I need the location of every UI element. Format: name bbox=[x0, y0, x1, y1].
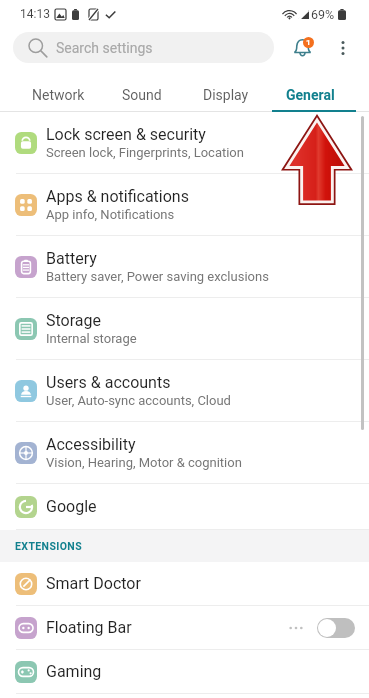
staticText: 69% bbox=[311, 7, 335, 22]
staticText: Lock screen & security bbox=[46, 125, 206, 144]
staticText: EXTENSIONS bbox=[15, 540, 83, 552]
button[interactable]: Display bbox=[184, 80, 268, 109]
button[interactable]: Network bbox=[16, 80, 100, 109]
staticText: Network bbox=[32, 87, 85, 103]
staticText: Display bbox=[203, 87, 249, 103]
staticText: Battery bbox=[46, 249, 97, 268]
staticText: Screen lock, Fingerprints, Location bbox=[46, 145, 244, 160]
button[interactable]: Gaming bbox=[0, 650, 369, 694]
button[interactable]: Users & accounts bbox=[0, 360, 369, 422]
staticText: Accessibility bbox=[46, 435, 136, 454]
button[interactable]: General bbox=[268, 80, 352, 109]
staticText: Users & accounts bbox=[46, 373, 171, 392]
button[interactable]: Notifications bbox=[286, 33, 316, 61]
staticText: 14:13 bbox=[20, 7, 50, 21]
button[interactable]: Battery bbox=[0, 236, 369, 298]
button[interactable]: More options bbox=[332, 32, 354, 64]
staticText: Floating Bar bbox=[46, 618, 289, 637]
staticText: Internal storage bbox=[46, 331, 137, 346]
staticText: Vision, Hearing, Motor & cognition bbox=[46, 455, 242, 470]
button[interactable]: Accessibility bbox=[0, 422, 369, 484]
staticText: Storage bbox=[46, 311, 101, 330]
button[interactable]: Apps & notifications bbox=[0, 174, 369, 236]
button[interactable]: Google bbox=[0, 484, 369, 530]
button[interactable]: Storage bbox=[0, 298, 369, 360]
staticText: Search settings bbox=[56, 40, 153, 56]
button[interactable]: Floating Bar bbox=[0, 606, 369, 650]
staticText: Google bbox=[46, 497, 97, 516]
button[interactable]: Lock screen & security bbox=[0, 112, 369, 174]
staticText: Gaming bbox=[46, 662, 355, 681]
button[interactable]: Search settings bbox=[13, 32, 274, 63]
staticText: 1 bbox=[306, 38, 311, 47]
button[interactable]: Smart Doctor bbox=[0, 562, 369, 606]
staticText: Sound bbox=[122, 87, 162, 103]
staticText: App info, Notifications bbox=[46, 207, 175, 222]
staticText: Smart Doctor bbox=[46, 574, 355, 593]
staticText: User, Auto-sync accounts, Cloud bbox=[46, 393, 231, 408]
staticText: Battery saver, Power saving exclusions bbox=[46, 269, 269, 284]
staticText: General bbox=[286, 87, 335, 103]
staticText: Apps & notifications bbox=[46, 187, 189, 206]
button[interactable]: Toggle Floating Bar bbox=[317, 618, 355, 638]
button[interactable]: Sound bbox=[100, 80, 184, 109]
